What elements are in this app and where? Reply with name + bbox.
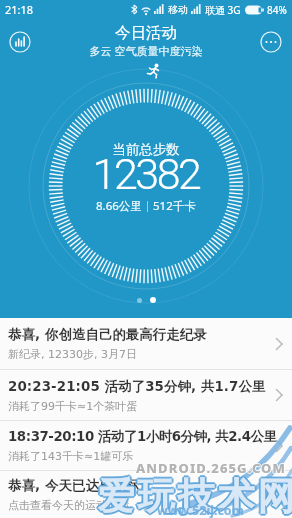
staticText: 消耗了143千卡≈1罐可乐 [8,449,134,463]
staticText: ANDROID.265G.COM [137,459,288,477]
staticText: ANDROID.265G.COM [136,460,287,478]
staticText: 爱玩技术网 [97,474,292,518]
button[interactable] [260,31,282,53]
staticText: 点击查看今天的运动成绩 [8,498,129,512]
staticText: 8.66公里 [96,198,142,214]
staticText: 恭喜, 今天已达成目标 [8,477,140,494]
staticText: 爱玩技术网 [97,472,292,518]
staticText: 20:23-21:05 活动了35分钟, 共1.7公里 [8,378,266,395]
button[interactable]: 18:37-20:10 活动了1小时6分钟, 共2.4公里 [0,421,292,470]
staticText: 多云 空气质量中度污染 [0,43,292,58]
staticText: 联通 3G [205,3,241,17]
staticText: 移动 [168,3,188,16]
staticText: 爱玩技术网 [96,475,292,518]
button[interactable]: 恭喜, 你创造自己的最高行走纪录 [0,318,292,369]
staticText: 爱玩技术网 [96,473,292,518]
staticText: ANDROID.265G.COM [135,459,286,477]
staticText: 今日活动 [0,23,292,43]
staticText: 21:18 [5,2,34,17]
staticText: 爱玩技术网 [94,473,292,518]
staticText: 爱玩技术网 [96,471,292,518]
staticText: ANDROID.265G.COM [136,458,287,476]
button[interactable]: 20:23-21:05 活动了35分钟, 共1.7公里 [0,370,292,420]
staticText: 新纪录, 12330步, 3月7日 [8,347,137,361]
button[interactable] [9,31,31,53]
staticText: 当前总步数 [0,141,292,158]
staticText: 12382 [0,149,292,199]
staticText: ANDROID.265G.COM [136,459,287,477]
staticText: 消耗了99千卡≈1个茶叶蛋 [8,399,138,413]
staticText: www.52ij.com [157,502,244,518]
button[interactable]: 恭喜, 今天已达成目标 [0,471,292,518]
staticText: 18:37-20:10 活动了1小时6分钟, 共2.4公里 [8,428,277,445]
staticText: 爱玩技术网 [98,473,292,518]
staticText: 爱玩技术网 [95,472,292,518]
staticText: 恭喜, 你创造自己的最高行走纪录 [8,326,207,343]
staticText: 爱玩技术网 [95,474,292,518]
staticText: 84% [267,3,287,17]
staticText: 512千卡 [153,198,196,214]
